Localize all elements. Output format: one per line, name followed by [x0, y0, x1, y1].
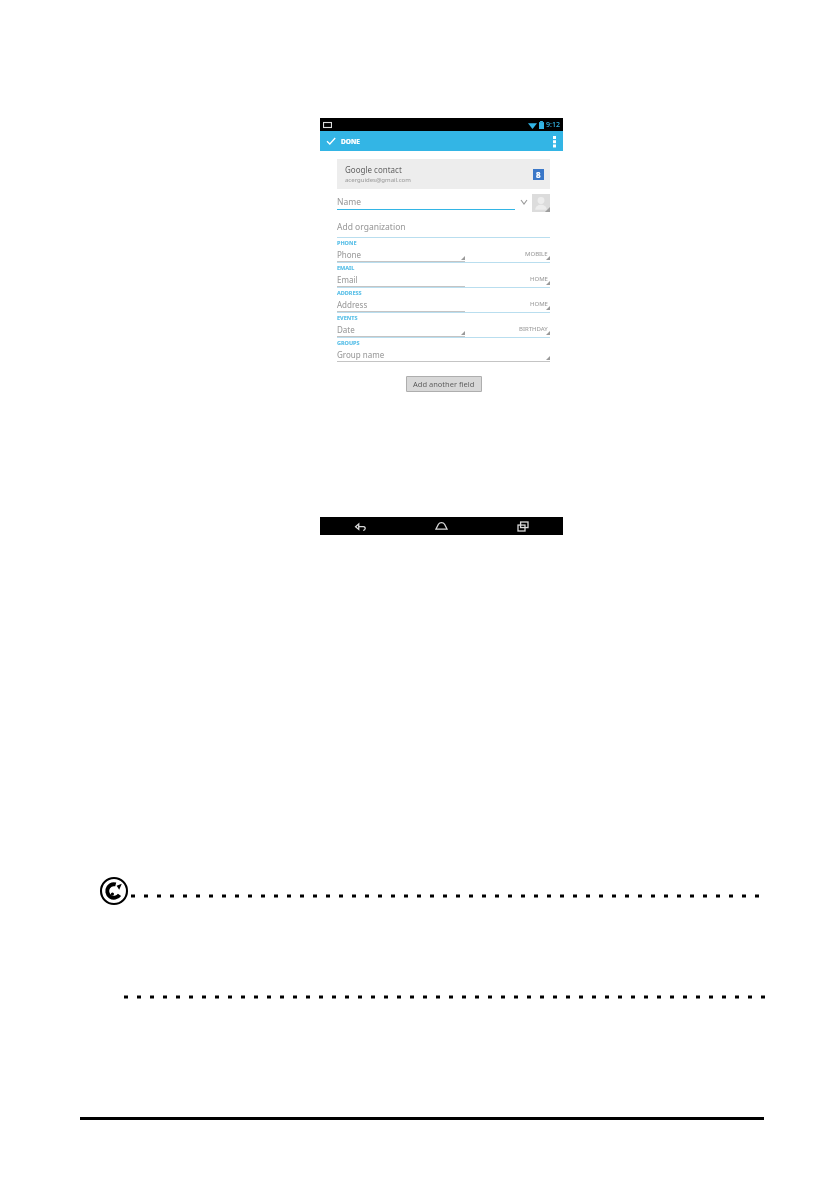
staticText: Group name	[337, 349, 385, 360]
staticText: PHONE	[337, 239, 357, 246]
staticText: Phone	[337, 249, 362, 260]
staticText: HOME	[530, 275, 548, 283]
staticText: MOBILE	[525, 250, 548, 258]
button[interactable]: Name	[337, 194, 515, 210]
button[interactable]: Add another field	[406, 376, 482, 392]
staticText: Email	[337, 274, 358, 285]
button[interactable]: DONE	[320, 133, 366, 149]
button[interactable]: Date	[337, 322, 550, 337]
staticText: HOME	[530, 300, 548, 308]
button[interactable]: Expand name	[519, 194, 529, 209]
button[interactable]: Home	[401, 517, 482, 535]
staticText: 8	[536, 169, 541, 180]
button[interactable]: Add organization	[337, 220, 550, 233]
staticText: BIRTHDAY	[519, 325, 548, 333]
staticText: Address	[337, 299, 368, 310]
button[interactable]: Recent apps	[482, 517, 563, 535]
button[interactable]: Add contact photo	[532, 194, 550, 212]
staticText: Name	[337, 196, 361, 208]
button[interactable]: Group name	[337, 347, 550, 362]
staticText: Google contact	[345, 164, 402, 175]
staticText: Add another field	[413, 379, 475, 389]
button[interactable]: Phone	[337, 247, 550, 262]
staticText: ADDRESS	[337, 289, 362, 296]
staticText: DONE	[341, 137, 360, 146]
staticText: acerguides@gmail.com	[345, 176, 411, 184]
staticText: 9:12	[546, 120, 560, 130]
staticText: EMAIL	[337, 264, 355, 271]
button[interactable]: Google contact	[337, 159, 550, 189]
staticText: Add organization	[337, 221, 406, 233]
staticText: GROUPS	[337, 339, 360, 346]
button[interactable]: More options	[546, 133, 563, 150]
staticText: EVENTS	[337, 314, 358, 321]
button[interactable]: Address	[337, 297, 550, 312]
button[interactable]: Back	[320, 517, 401, 535]
staticText: Date	[337, 324, 355, 335]
button[interactable]: Email	[337, 272, 550, 287]
